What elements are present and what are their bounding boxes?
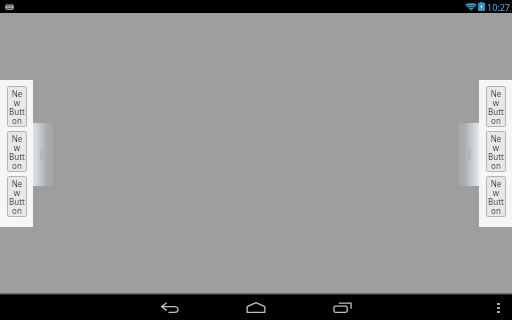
button[interactable]: Home [238, 295, 273, 320]
staticText: Ne w Butt on [9, 133, 25, 172]
button[interactable]: Ne w Butt on [7, 86, 27, 127]
button[interactable]: Ne w Butt on [486, 86, 506, 127]
button[interactable]: Drawer handle [28, 123, 53, 186]
button[interactable]: More options [485, 295, 511, 320]
button[interactable]: Drawer handle [458, 123, 483, 186]
staticText: 10:27 [487, 1, 511, 13]
button[interactable]: Ne w Butt on [486, 131, 506, 172]
button[interactable]: Ne w Butt on [7, 131, 27, 172]
staticText: Ne w Butt on [488, 178, 504, 217]
staticText: Ne w Butt on [9, 178, 25, 217]
staticText: Ne w Butt on [488, 88, 504, 127]
staticText: Ne w Butt on [9, 88, 25, 127]
button[interactable]: Ne w Butt on [486, 176, 506, 217]
staticText: Ne w Butt on [488, 133, 504, 172]
button[interactable]: Ne w Butt on [7, 176, 27, 217]
button[interactable]: Recent apps [325, 295, 360, 320]
button[interactable]: Back [152, 295, 187, 320]
